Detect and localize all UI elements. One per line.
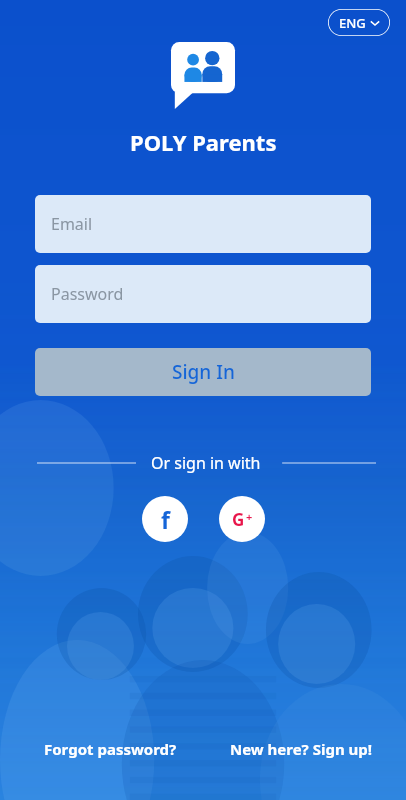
button[interactable]: Sign in with Google Plus — [219, 496, 265, 542]
staticText: POLY Parents — [130, 127, 277, 157]
staticText: Password — [51, 283, 124, 305]
staticText: f — [161, 504, 170, 535]
button[interactable]: Language ENG — [328, 9, 390, 36]
button[interactable]: Forgot password? — [44, 735, 177, 763]
button[interactable]: Password — [35, 265, 371, 323]
staticText: Forgot password? — [44, 739, 177, 759]
staticText: + — [246, 509, 253, 524]
button[interactable]: Sign in with Facebook — [142, 496, 188, 542]
button[interactable]: Sign In — [35, 348, 371, 396]
staticText: Sign In — [172, 359, 235, 385]
button[interactable]: New here? Sign up! — [229, 735, 372, 763]
button[interactable]: Email — [35, 195, 371, 253]
staticText: G — [232, 508, 245, 531]
staticText: ENG — [339, 14, 366, 32]
staticText: Or sign in with — [151, 452, 261, 474]
staticText: New here? Sign up! — [229, 739, 372, 759]
staticText: Email — [51, 213, 93, 235]
